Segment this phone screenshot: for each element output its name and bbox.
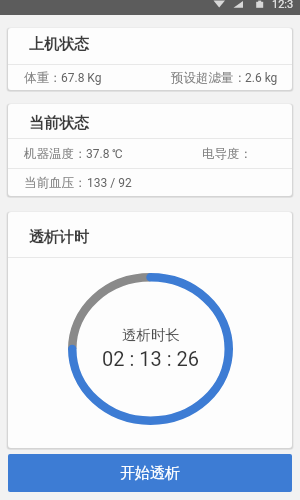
staticText: 2.6 kg: [245, 71, 278, 85]
staticText: 02 : 13 : 26: [102, 347, 199, 370]
staticText: 透析计时: [29, 228, 89, 247]
staticText: 体重：: [24, 70, 62, 86]
staticText: 透析时长: [122, 326, 180, 344]
staticText: 机器温度：: [24, 146, 87, 162]
staticText: 电导度：: [202, 146, 252, 162]
staticText: 12:3: [272, 0, 294, 11]
staticText: 37.8 ℃: [86, 147, 123, 161]
staticText: 当前状态: [29, 114, 89, 133]
staticText: 133 / 92: [87, 176, 132, 190]
staticText: 当前血压：: [24, 175, 87, 191]
staticText: 开始透析: [120, 464, 180, 483]
button[interactable]: 开始透析: [8, 454, 292, 492]
staticText: 67.8 Kg: [61, 71, 102, 85]
staticText: 预设超滤量：: [171, 70, 246, 86]
staticText: 上机状态: [29, 35, 89, 54]
